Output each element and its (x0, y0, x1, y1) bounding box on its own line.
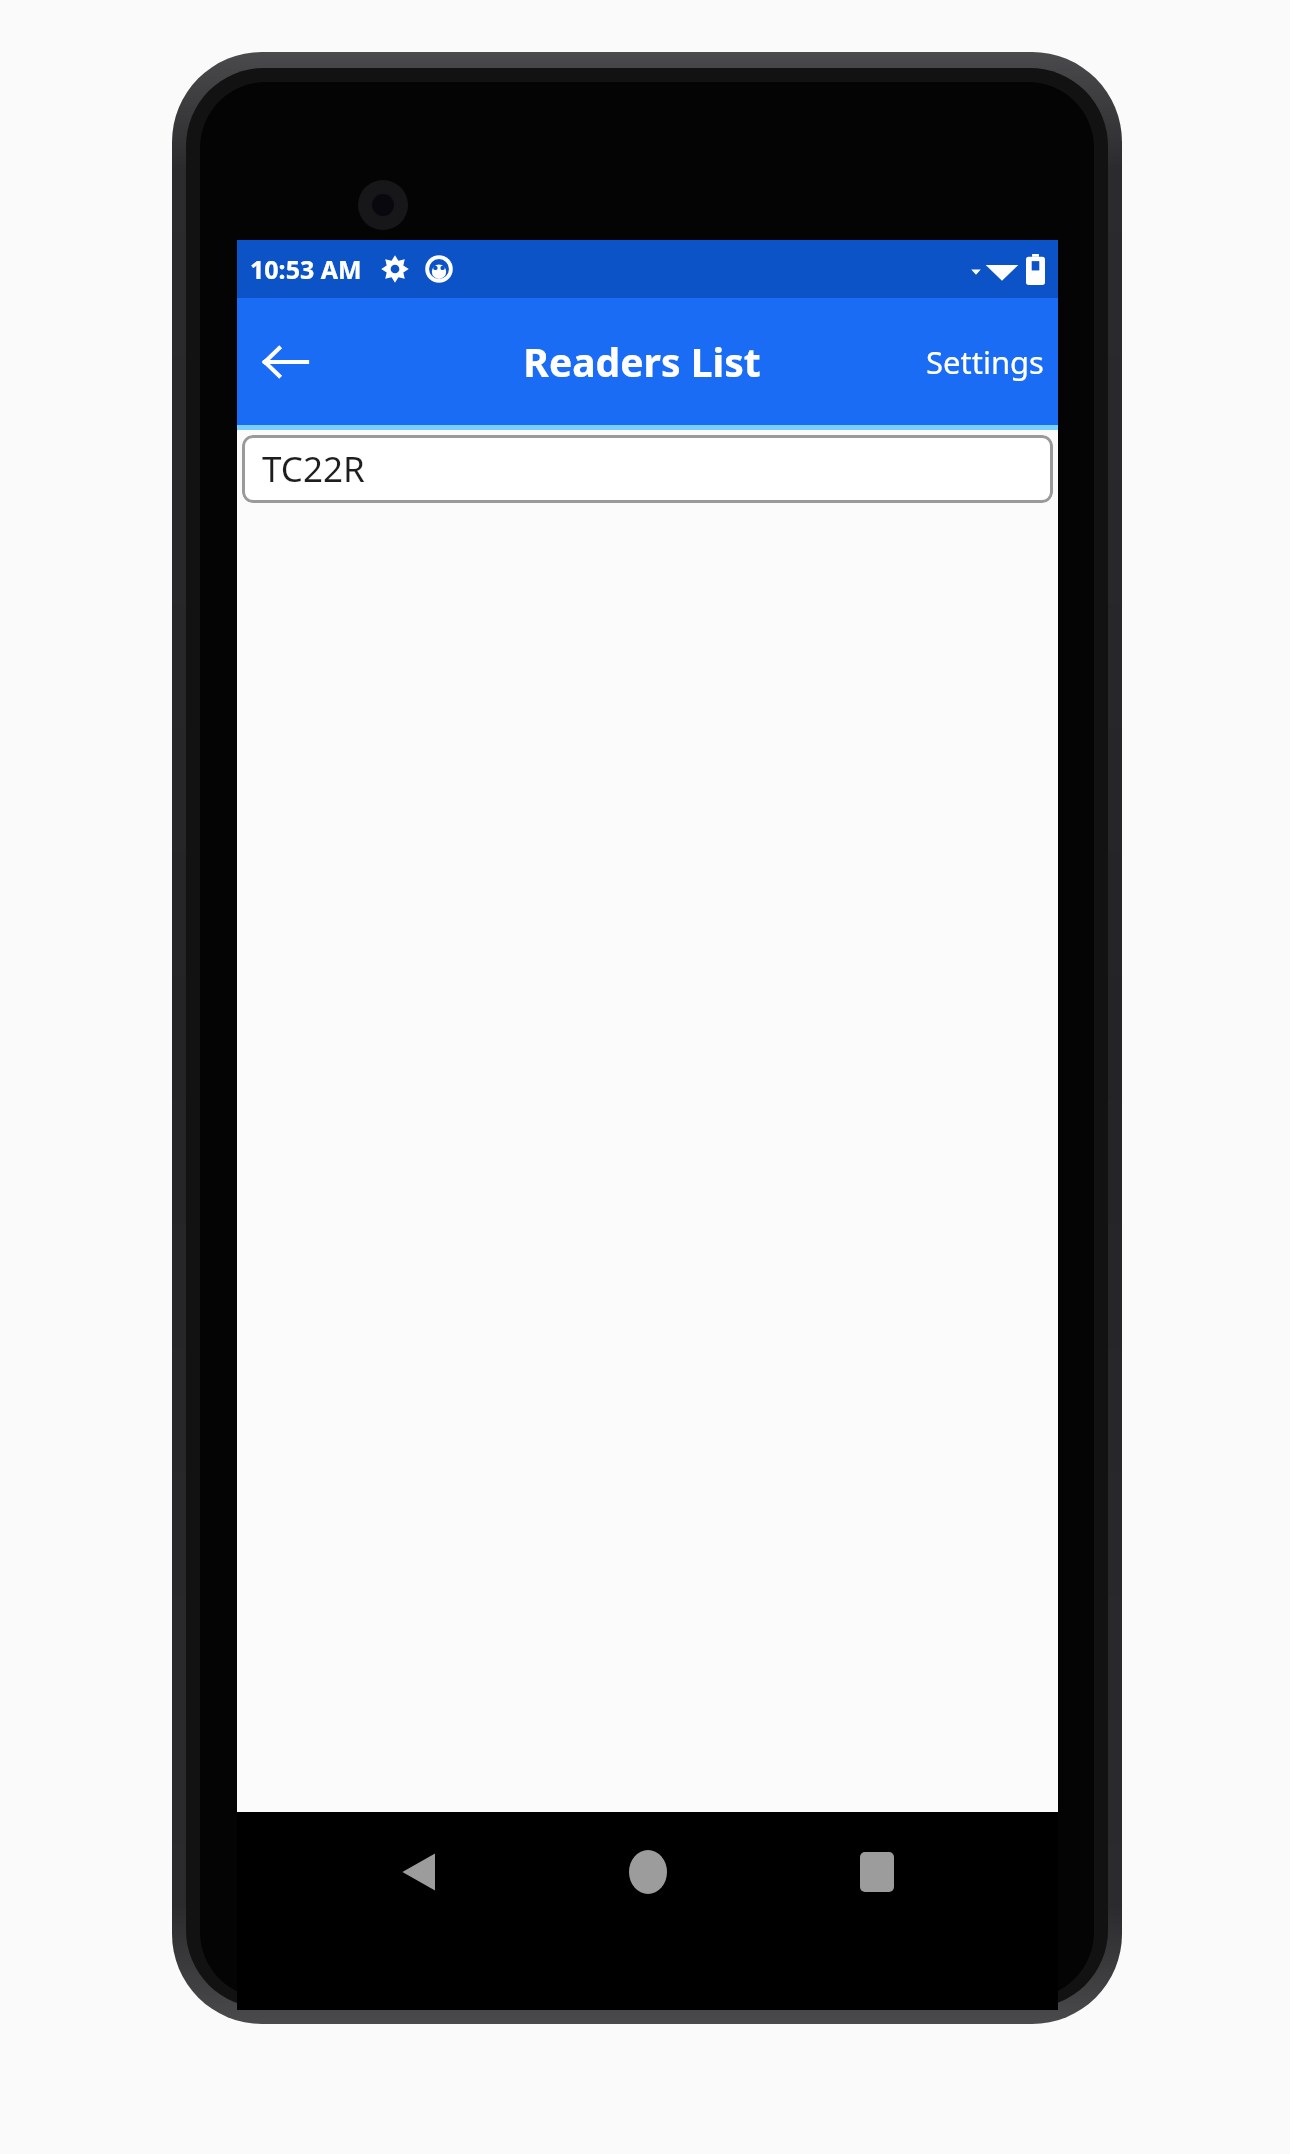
button[interactable]: Back (245, 322, 325, 402)
staticText: TC22R (262, 445, 365, 493)
staticText: Readers List (523, 335, 761, 388)
staticText: Settings (926, 341, 1044, 383)
button[interactable]: Home (600, 1824, 696, 1920)
staticText: 10:53 AM (250, 252, 362, 286)
button[interactable]: Back (370, 1824, 466, 1920)
button[interactable]: Recent apps (829, 1824, 925, 1920)
button[interactable]: TC22R (242, 435, 1053, 503)
button[interactable]: Settings (912, 323, 1058, 401)
